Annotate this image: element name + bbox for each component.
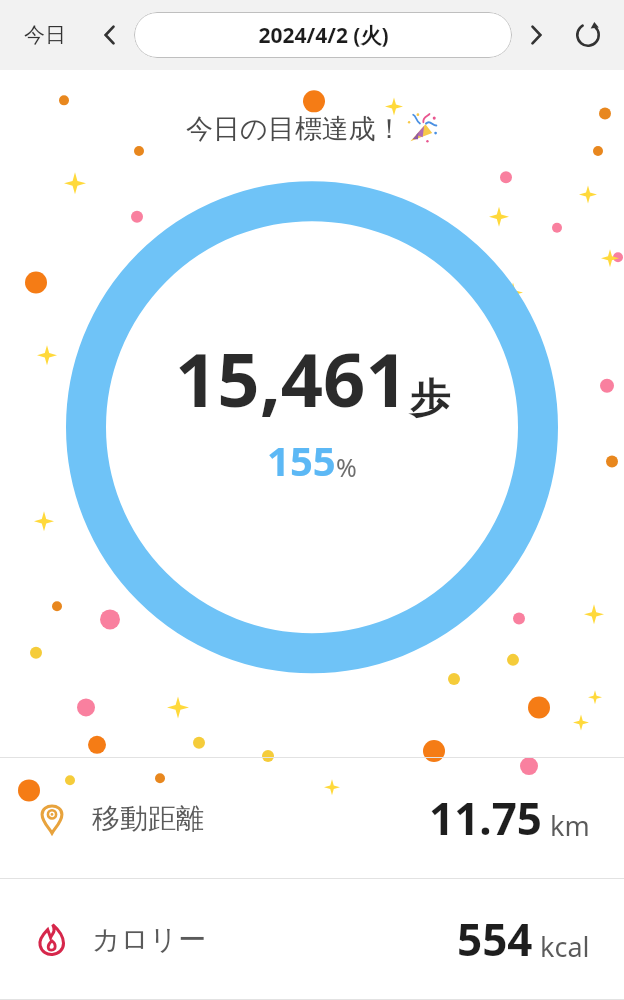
button[interactable]: 更新 — [566, 13, 610, 57]
staticText: 11.75 — [429, 788, 543, 848]
staticText: 歩 — [410, 373, 450, 423]
staticText: 554 — [457, 909, 533, 969]
staticText: 今日の目標達成！ — [186, 112, 403, 146]
staticText: 155 — [267, 433, 336, 487]
button[interactable]: 前の日 — [90, 15, 130, 55]
staticText: カロリー — [92, 922, 206, 957]
staticText: 今日 — [24, 22, 66, 48]
staticText: 15,461 — [175, 328, 408, 429]
staticText: % — [336, 450, 357, 484]
staticText: kcal — [540, 928, 590, 965]
staticText: 2024/4/2 (火) — [258, 21, 389, 50]
staticText: km — [550, 807, 590, 844]
button[interactable]: カロリー — [0, 879, 624, 999]
button[interactable]: 今日 — [14, 16, 76, 54]
button[interactable]: 次の日 — [516, 15, 556, 55]
staticText: 移動距離 — [92, 801, 204, 836]
button[interactable]: 移動距離 — [0, 758, 624, 878]
button[interactable]: 2024/4/2 (火) — [134, 12, 512, 58]
